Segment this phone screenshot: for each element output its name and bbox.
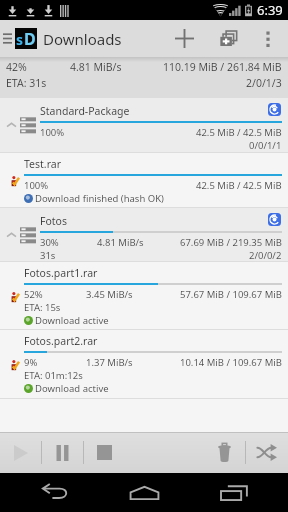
button[interactable]: Package actions — [268, 103, 281, 116]
button[interactable]: Stop — [84, 432, 125, 473]
staticText: 0/0/1/1 — [249, 139, 282, 152]
staticText: ETA: 01m:12s — [24, 369, 83, 382]
staticText: 9% — [24, 356, 38, 369]
staticText: 42.5 MiB / 42.5 MiB — [196, 179, 282, 192]
staticText: Fotos — [40, 214, 67, 228]
button[interactable]: Start — [0, 432, 41, 473]
staticText: Download active — [35, 314, 109, 327]
staticText: 110.19 MiB / 261.84 MiB — [163, 60, 282, 74]
staticText: 2/0/1/3 — [246, 76, 282, 90]
staticText: 4.81 MiB/s — [70, 60, 122, 74]
button[interactable]: Test.rar — [0, 153, 288, 207]
staticText: 6:39 — [257, 1, 283, 19]
staticText: Test.rar — [24, 157, 62, 171]
button[interactable]: Fotos — [0, 208, 288, 261]
staticText: 42.5 MiB / 42.5 MiB — [196, 126, 282, 139]
staticText: Fotos.part2.rar — [24, 334, 98, 348]
button[interactable]: More options — [254, 20, 282, 57]
staticText: ETA: 15s — [24, 301, 61, 314]
staticText: 31s — [40, 249, 56, 261]
staticText: 57.67 MiB / 109.67 MiB — [180, 288, 282, 301]
staticText: Download finished (hash OK) — [35, 192, 164, 205]
button[interactable]: Shuffle — [246, 432, 287, 473]
button[interactable]: Pause — [42, 432, 83, 473]
button[interactable]: Fotos.part1.rar — [0, 262, 288, 329]
button[interactable]: Standard-Package — [0, 98, 288, 152]
staticText: 3.45 MiB/s — [86, 288, 133, 301]
staticText: D — [24, 28, 36, 49]
staticText: 42% — [6, 60, 27, 74]
button[interactable]: Home — [109, 473, 179, 512]
staticText: Downloads — [43, 29, 122, 49]
button[interactable]: Add download — [166, 20, 202, 57]
staticText: 10.14 MiB / 109.67 MiB — [180, 356, 282, 369]
button[interactable]: Package actions — [268, 213, 281, 226]
staticText: 2/0/0/2 — [249, 249, 282, 261]
staticText: 100% — [40, 126, 65, 139]
button[interactable]: Recent apps — [199, 473, 269, 512]
button[interactable]: Fotos.part2.rar — [0, 330, 288, 398]
staticText: 30% — [40, 236, 59, 249]
button[interactable]: Menu — [0, 20, 14, 57]
button[interactable]: Add multiple downloads — [210, 20, 246, 57]
staticText: 52% — [24, 288, 43, 301]
staticText: 1.37 MiB/s — [86, 356, 133, 369]
staticText: s — [16, 30, 24, 49]
staticText: 4.81 MiB/s — [97, 236, 144, 249]
button[interactable]: Delete — [204, 432, 245, 473]
staticText: 100% — [24, 179, 49, 192]
staticText: Download active — [35, 382, 109, 395]
button[interactable]: Back — [20, 473, 90, 512]
staticText: ETA: 31s — [6, 76, 47, 90]
staticText: Fotos.part1.rar — [24, 266, 98, 280]
staticText: 67.69 MiB / 219.35 MiB — [180, 236, 282, 249]
staticText: Standard-Package — [40, 104, 130, 118]
